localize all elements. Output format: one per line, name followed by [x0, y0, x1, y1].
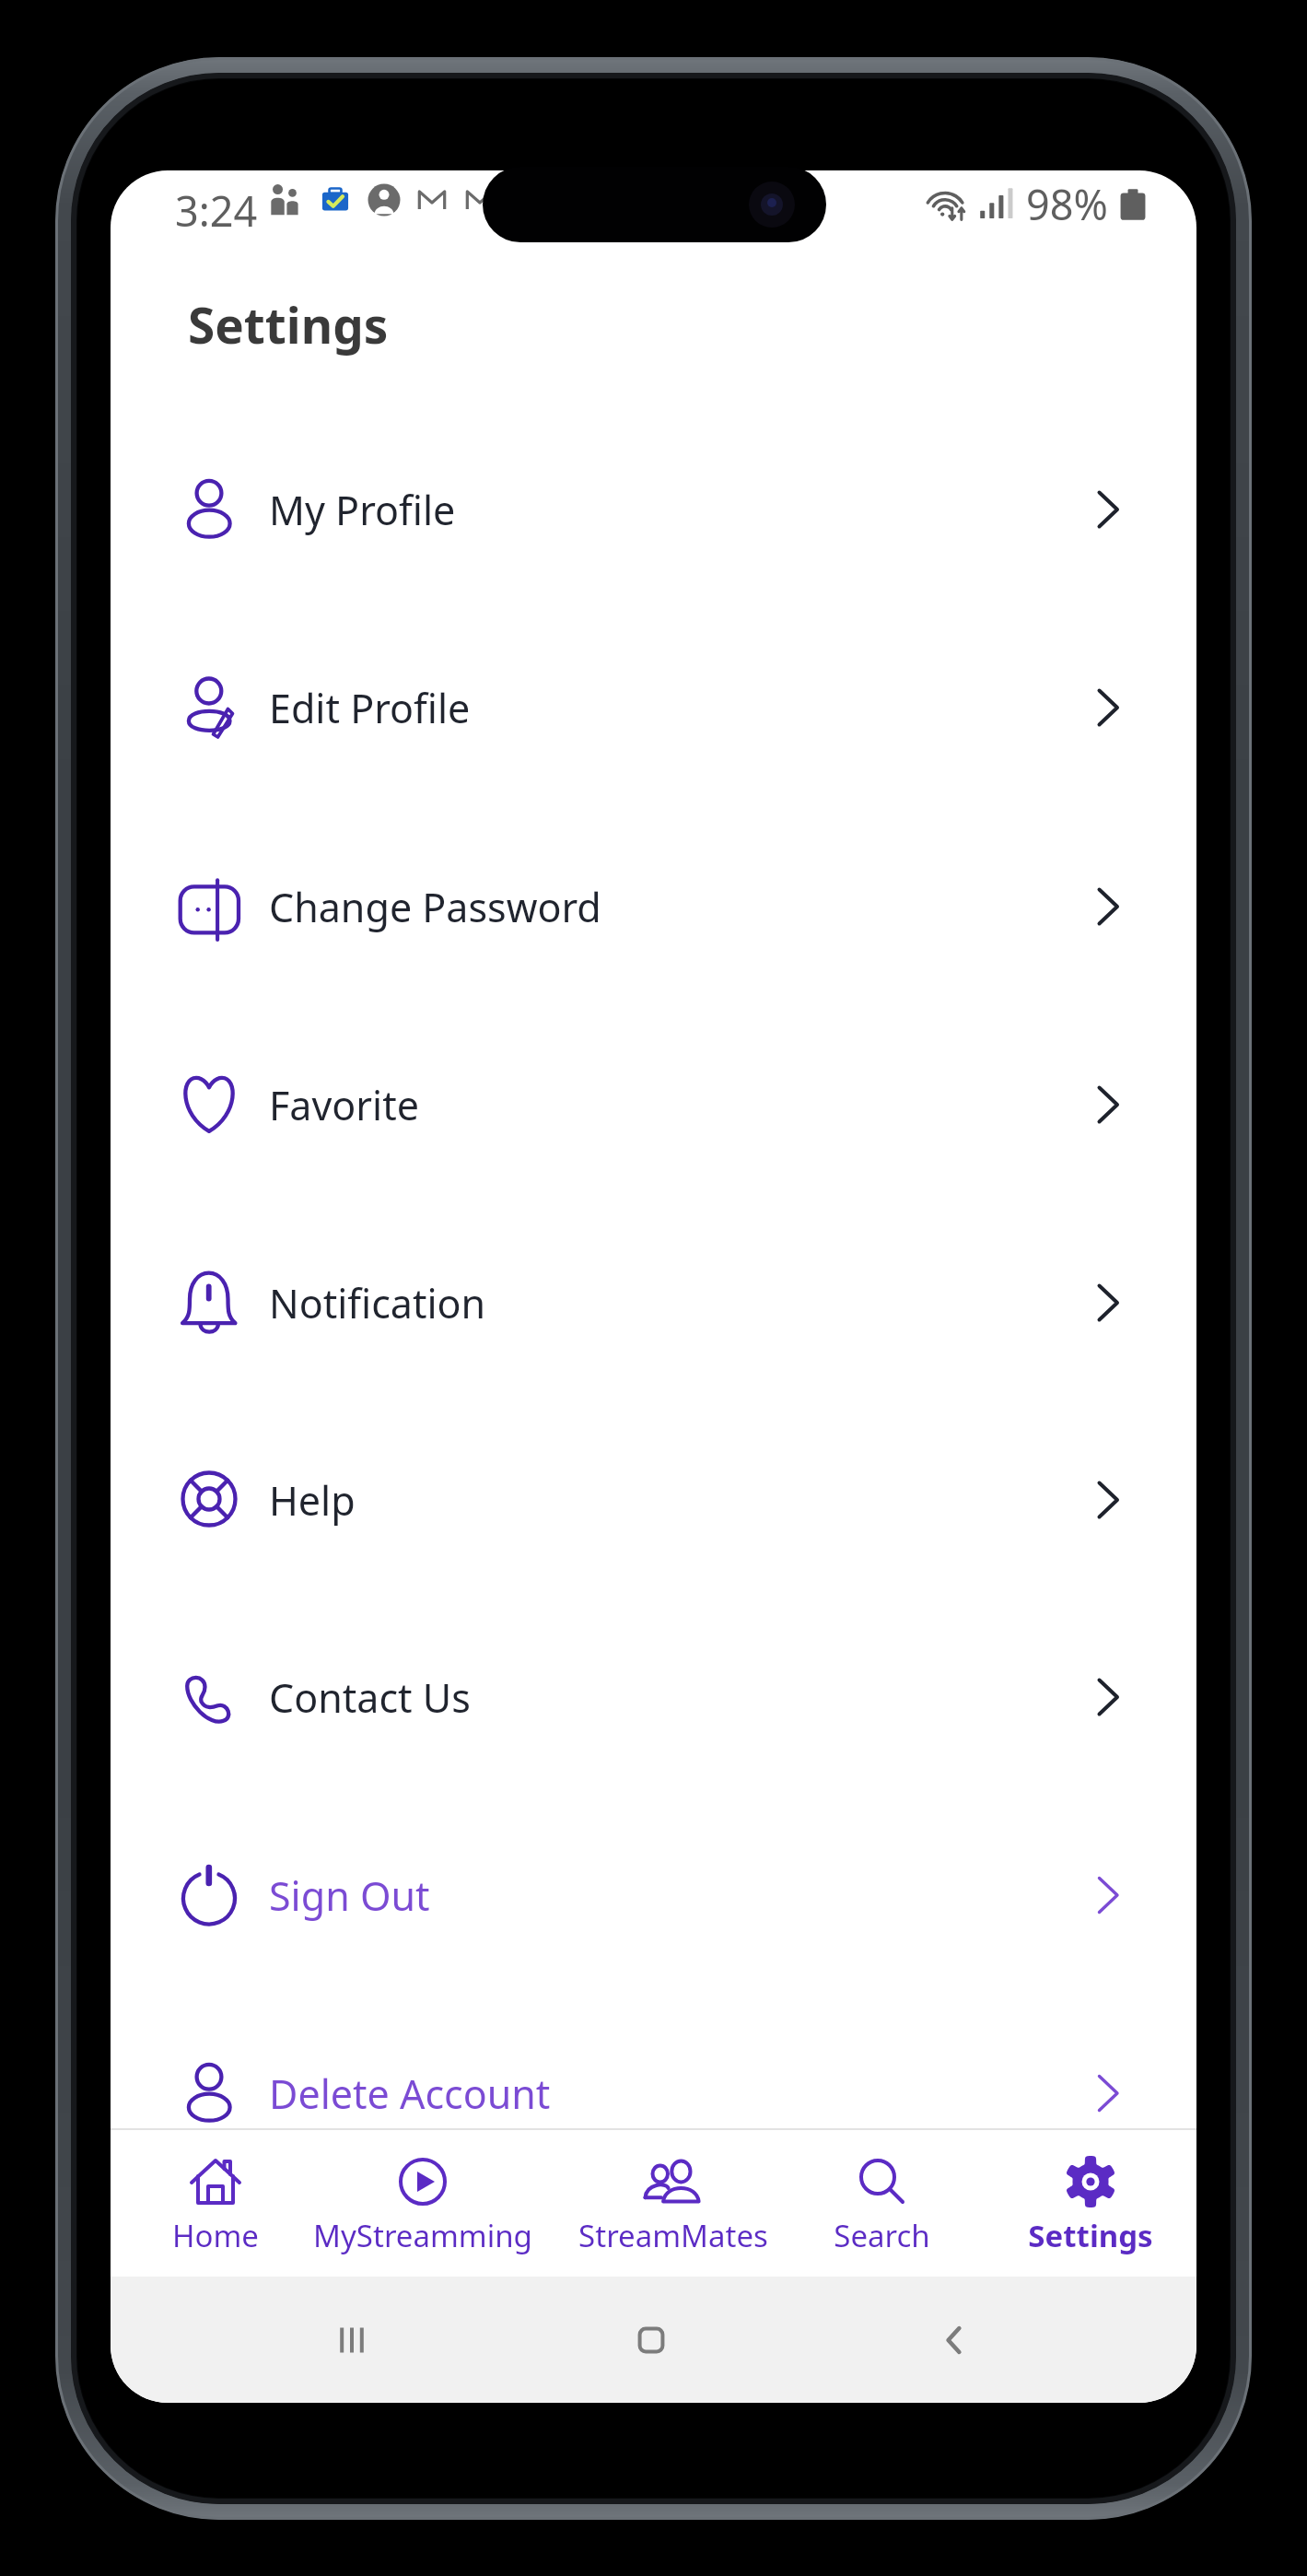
- button[interactable]: Search: [762, 2130, 1001, 2277]
- button[interactable]: Back: [929, 2315, 979, 2365]
- staticText: Contact Us: [269, 1670, 471, 1725]
- button[interactable]: Contact Us: [111, 1598, 1196, 1796]
- button[interactable]: Recent apps: [327, 2315, 377, 2365]
- staticText: Edit Profile: [269, 681, 471, 735]
- button[interactable]: Sign Out: [111, 1797, 1196, 1994]
- button[interactable]: Help: [111, 1401, 1196, 1598]
- button[interactable]: Change Password: [111, 808, 1196, 1005]
- button[interactable]: Delete Account: [111, 1995, 1196, 2192]
- button[interactable]: My Profile: [111, 411, 1196, 608]
- staticText: Notification: [269, 1276, 486, 1330]
- staticText: MyStreamming: [313, 2215, 532, 2256]
- staticText: Home: [172, 2215, 259, 2256]
- staticText: Settings: [188, 291, 389, 357]
- staticText: Help: [269, 1473, 356, 1528]
- staticText: 3:24: [175, 182, 258, 239]
- button[interactable]: Settings: [971, 2130, 1196, 2277]
- staticText: Favorite: [269, 1078, 419, 1132]
- staticText: Search: [834, 2215, 930, 2256]
- staticText: StreamMates: [578, 2215, 768, 2256]
- button[interactable]: Favorite: [111, 1006, 1196, 1203]
- button[interactable]: Home: [111, 2130, 335, 2277]
- staticText: Change Password: [269, 880, 601, 934]
- button[interactable]: Home: [626, 2315, 676, 2365]
- button[interactable]: Notification: [111, 1204, 1196, 1401]
- button[interactable]: MyStreamming: [303, 2130, 543, 2277]
- button[interactable]: Edit Profile: [111, 609, 1196, 806]
- button[interactable]: StreamMates: [554, 2130, 793, 2277]
- staticText: Settings: [1028, 2215, 1153, 2256]
- staticText: Delete Account: [269, 2067, 551, 2121]
- staticText: Sign Out: [269, 1868, 430, 1923]
- staticText: 98%: [1026, 176, 1108, 232]
- staticText: My Profile: [269, 483, 456, 537]
